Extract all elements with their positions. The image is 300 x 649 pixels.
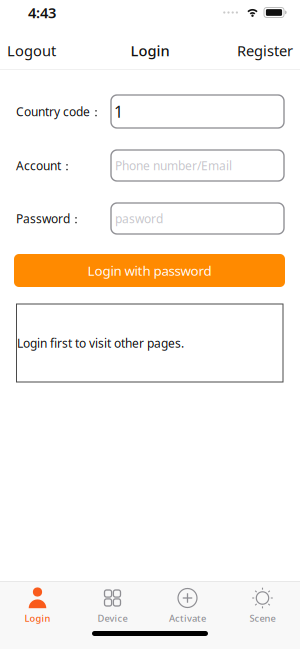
button[interactable]: Register xyxy=(237,41,293,60)
staticText: Account： xyxy=(16,157,73,173)
button[interactable]: Login with password xyxy=(14,254,285,287)
staticText: Login xyxy=(130,41,169,60)
staticText: Password： xyxy=(16,210,82,226)
button[interactable]: Scene xyxy=(225,587,300,624)
staticText: 4:43 xyxy=(28,3,56,22)
staticText: Phone number/Email xyxy=(115,157,232,173)
button[interactable]: Activate xyxy=(150,587,225,624)
staticText: Device xyxy=(97,612,127,624)
staticText: Activate xyxy=(169,612,206,624)
staticText: Logout xyxy=(7,41,56,60)
staticText: Country code： xyxy=(16,103,102,119)
button[interactable]: Account： xyxy=(111,150,284,181)
staticText: Login with password xyxy=(87,262,211,279)
staticText: Register xyxy=(237,41,293,60)
staticText: pasword xyxy=(115,210,163,226)
staticText: Scene xyxy=(249,612,275,624)
button[interactable]: Login xyxy=(0,587,75,624)
button[interactable]: Password： xyxy=(111,203,284,234)
button[interactable]: Logout xyxy=(7,41,56,60)
button[interactable]: Device xyxy=(75,587,150,624)
staticText: Login first to visit other pages. xyxy=(17,335,184,351)
button[interactable]: Country code： xyxy=(111,95,284,128)
staticText: Login xyxy=(24,612,50,624)
staticText: 1 xyxy=(114,101,123,122)
